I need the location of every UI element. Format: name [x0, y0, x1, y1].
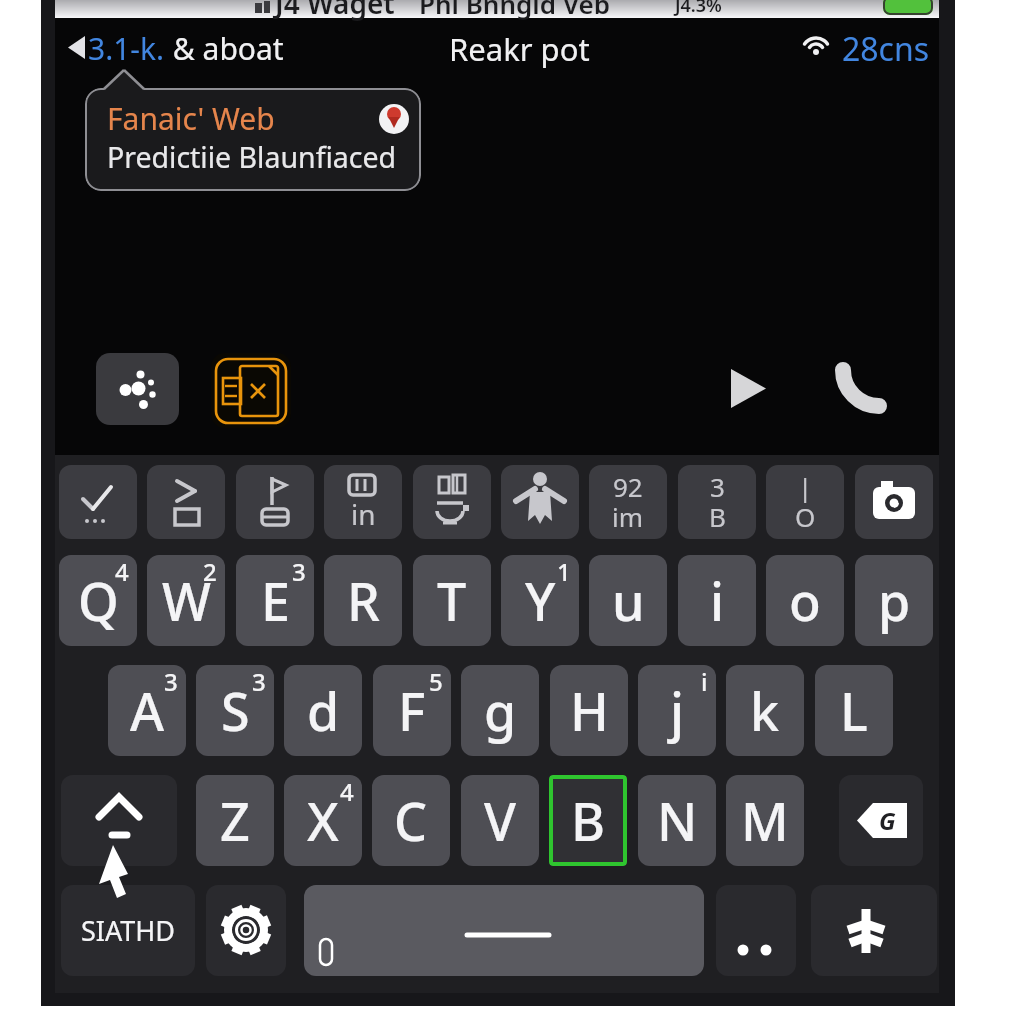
staticText: M [741, 785, 789, 856]
staticText: im [612, 499, 644, 534]
button[interactable]: | [766, 465, 844, 539]
staticText: B [709, 499, 726, 534]
button[interactable]: C [372, 775, 450, 866]
button[interactable]: d [284, 665, 362, 756]
button[interactable]: g [461, 665, 539, 756]
button[interactable] [61, 775, 177, 866]
staticText: N [657, 785, 698, 856]
button[interactable]: o [766, 555, 844, 646]
button[interactable]: SIATHD [61, 885, 195, 976]
staticText: S [221, 675, 250, 746]
staticText: 3 [292, 555, 306, 588]
staticText: Reakr pot [449, 28, 590, 70]
button[interactable] [85, 88, 421, 191]
button[interactable] [501, 465, 579, 539]
staticText: Y [525, 565, 556, 636]
button[interactable]: in [324, 465, 402, 539]
staticText: SIATHD [81, 912, 176, 949]
staticText: F [398, 675, 426, 746]
staticText: 4 [115, 555, 129, 588]
button[interactable]: T [413, 555, 491, 646]
staticText: Phi Bnngld Veb [419, 0, 611, 21]
staticText: Predictiie Blaunfiaced [107, 138, 397, 177]
staticText: J4 Waget [275, 0, 395, 22]
button[interactable]: V [461, 775, 539, 866]
button[interactable] [716, 885, 796, 976]
button[interactable]: X [284, 775, 362, 866]
staticText: E [261, 565, 290, 636]
button[interactable]: A [108, 665, 186, 756]
staticText: g [484, 675, 517, 746]
button[interactable]: Q [59, 555, 137, 646]
staticText: B [571, 785, 606, 856]
staticText: 5 [429, 665, 443, 698]
button[interactable]: 92 [589, 465, 667, 539]
button[interactable]: W [147, 555, 225, 646]
staticText: 4 [340, 775, 354, 808]
staticText: Z [220, 785, 250, 856]
staticText: & aboat [165, 28, 284, 69]
staticText: R [347, 565, 380, 636]
staticText: 3 [252, 665, 266, 698]
staticText: 3 [710, 469, 725, 504]
button[interactable]: R [324, 555, 402, 646]
staticText: H [570, 675, 609, 746]
button[interactable]: E [236, 555, 314, 646]
button[interactable] [59, 465, 137, 539]
staticText: G [879, 804, 896, 837]
staticText: A [130, 675, 165, 746]
button[interactable]: k [726, 665, 804, 756]
staticText: V [484, 785, 516, 856]
staticText: 92 [613, 469, 643, 504]
staticText: | [798, 469, 813, 504]
staticText: j [670, 675, 685, 746]
staticText: d [307, 675, 340, 746]
button[interactable]: p [855, 555, 933, 646]
staticText: k [750, 675, 780, 746]
staticText: 3.1-k. [88, 28, 165, 69]
button[interactable] [855, 465, 933, 539]
staticText: J4.3% [675, 0, 722, 18]
button[interactable]: 3.1-k. [88, 28, 284, 69]
staticText: 3 [164, 665, 178, 698]
button[interactable]: u [589, 555, 667, 646]
staticText: T [437, 565, 467, 636]
button[interactable]: i [678, 555, 756, 646]
staticText: W [162, 565, 211, 636]
button[interactable]: L [815, 665, 893, 756]
staticText: o [789, 565, 821, 636]
staticText: C [394, 785, 428, 856]
button[interactable] [236, 465, 314, 539]
button[interactable]: N [638, 775, 716, 866]
button[interactable]: j [638, 665, 716, 756]
button[interactable]: F [373, 665, 451, 756]
button[interactable]: 28cns [842, 27, 930, 71]
button[interactable] [206, 885, 286, 976]
staticText: X [307, 785, 339, 856]
button[interactable]: H [550, 665, 628, 756]
staticText: Fanaic' Web [107, 98, 275, 139]
button[interactable]: B [549, 775, 627, 866]
staticText: i [710, 565, 725, 636]
button[interactable] [147, 465, 225, 539]
button[interactable]: M [726, 775, 804, 866]
staticText: p [878, 565, 911, 636]
staticText: u [612, 565, 645, 636]
button[interactable]: G [839, 775, 923, 866]
button[interactable]: Z [196, 775, 274, 866]
button[interactable] [413, 465, 491, 539]
button[interactable]: S [196, 665, 274, 756]
staticText: in [351, 495, 376, 533]
staticText: O [795, 499, 816, 534]
staticText: i [701, 665, 708, 698]
button[interactable] [304, 885, 704, 976]
staticText: 1 [557, 555, 571, 588]
button[interactable] [811, 885, 937, 976]
button[interactable]: 3 [678, 465, 756, 539]
staticText: Q [78, 565, 119, 636]
staticText: L [840, 675, 868, 746]
button[interactable]: Y [501, 555, 579, 646]
staticText: 2 [203, 555, 217, 588]
